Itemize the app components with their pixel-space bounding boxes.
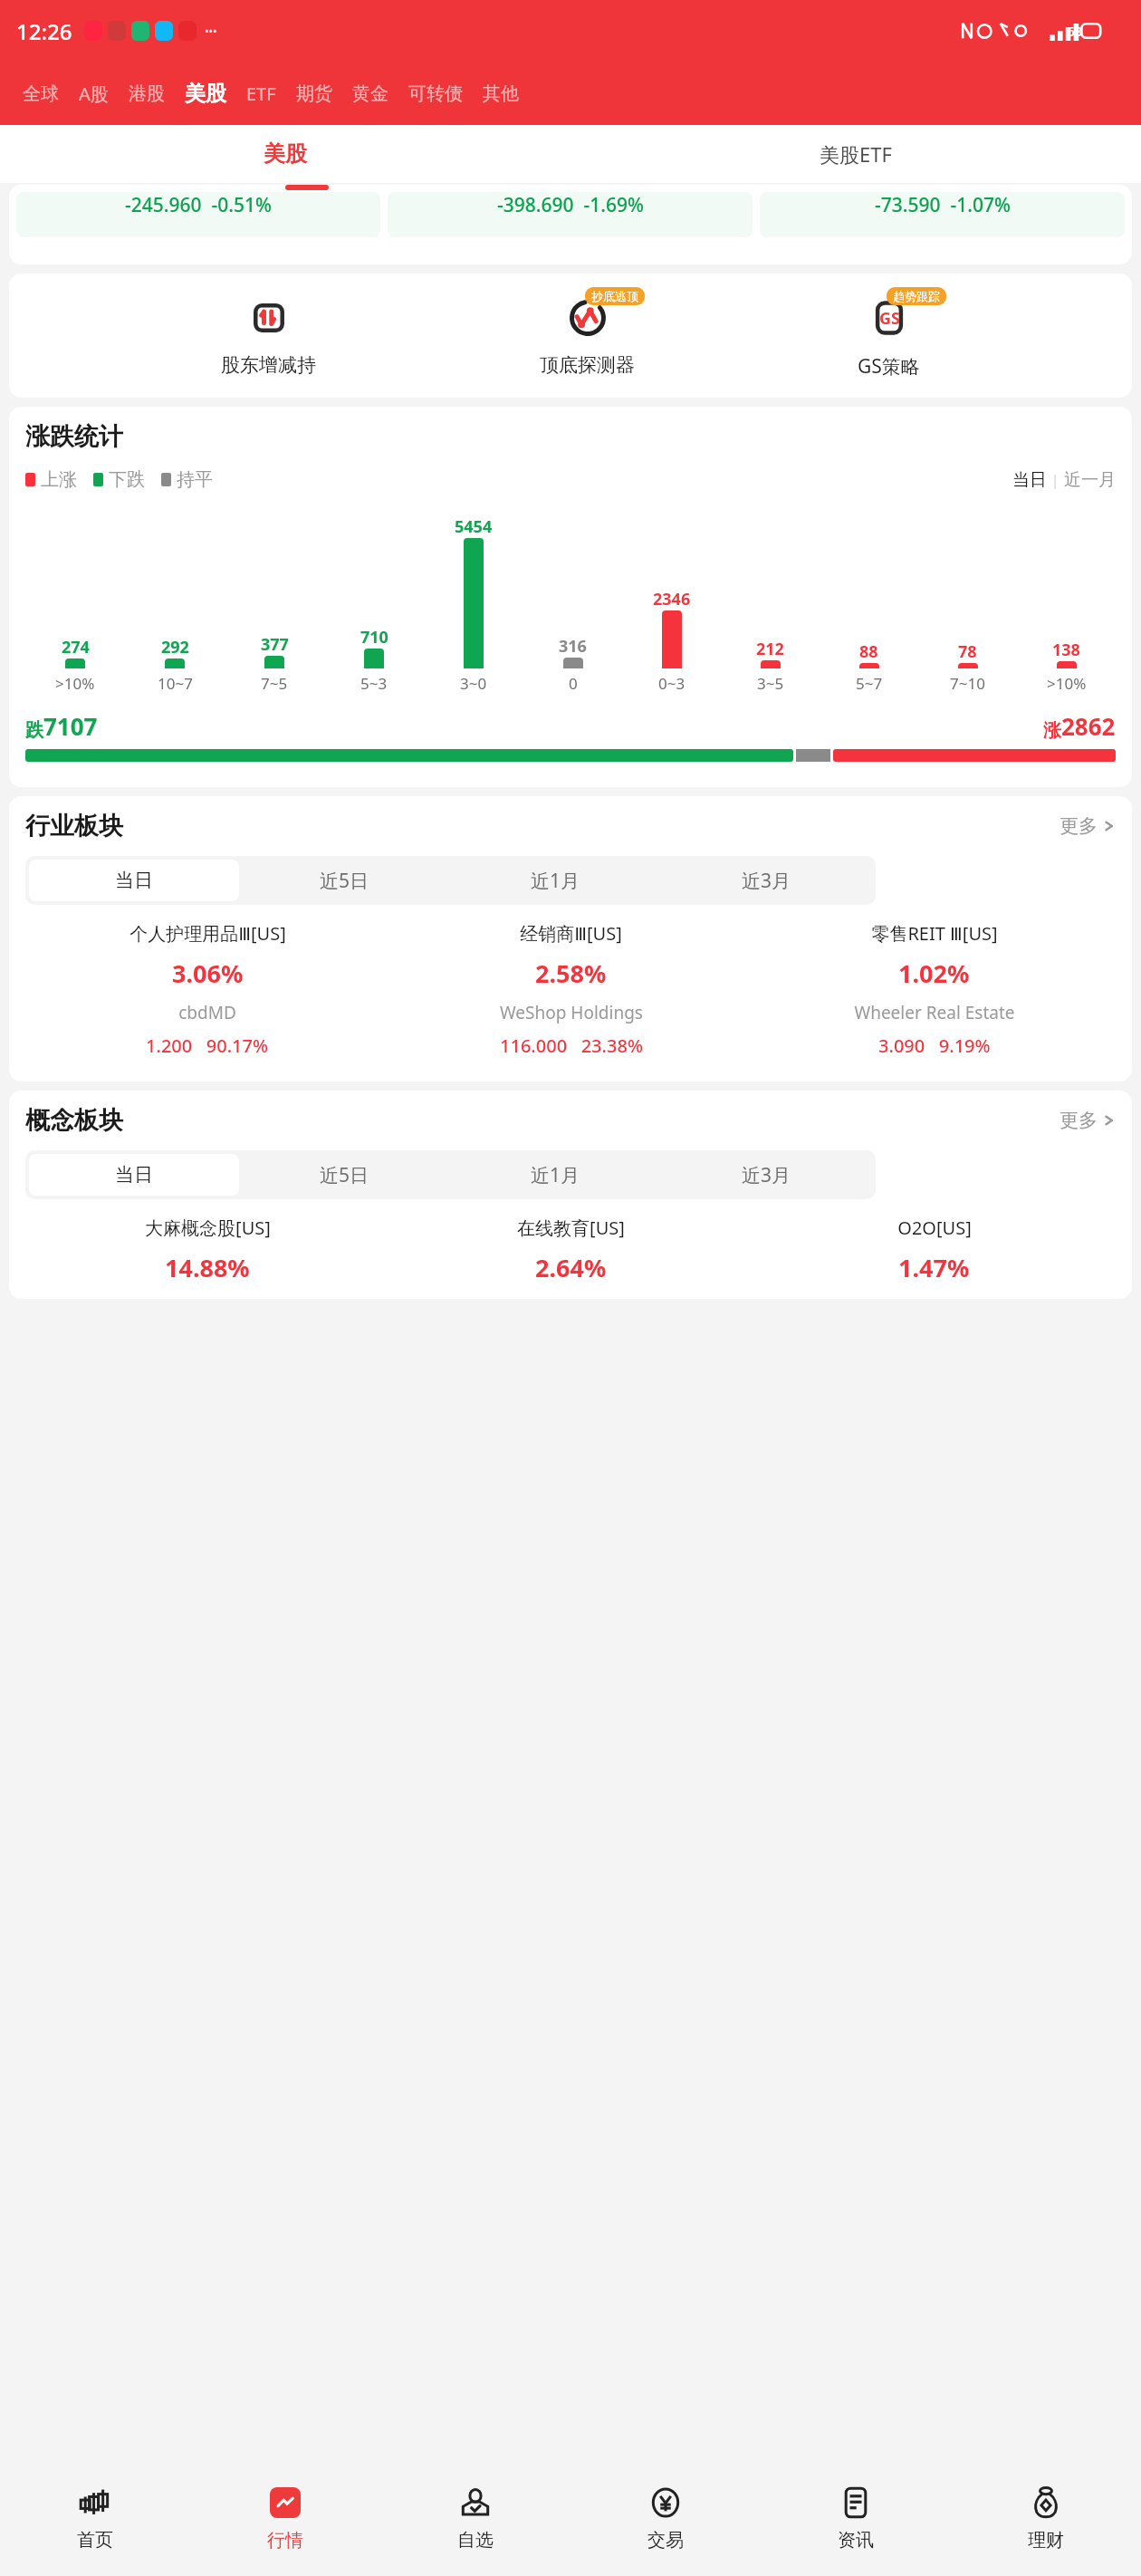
- staticText: 710: [360, 626, 388, 649]
- staticText: 黄金: [352, 82, 388, 105]
- staticText: 交易: [647, 2529, 684, 2552]
- staticText: 1.02%: [898, 956, 970, 990]
- staticText: 当日: [1012, 469, 1047, 491]
- staticText: •••: [205, 24, 217, 38]
- staticText: 116.000 23.38%: [500, 1033, 643, 1058]
- staticText: |: [1047, 469, 1064, 490]
- button[interactable]: A股: [69, 82, 119, 106]
- staticText: 7~10: [950, 673, 985, 694]
- button[interactable]: 行情: [190, 2458, 380, 2576]
- staticText: 2862: [1061, 710, 1116, 742]
- button[interactable]: 自选: [380, 2458, 570, 2576]
- staticText: 10~7: [158, 673, 193, 694]
- staticText: 212: [756, 638, 784, 660]
- staticText: GS策略: [858, 353, 920, 380]
- button[interactable]: 全球: [13, 82, 69, 105]
- button[interactable]: 零售REIT Ⅲ[US]: [753, 921, 1116, 1058]
- button[interactable]: GS策略: [847, 292, 931, 380]
- other: 自选: [459, 2486, 492, 2519]
- button[interactable]: 其他: [473, 82, 529, 105]
- staticText: 近1月: [531, 868, 580, 894]
- staticText: 63: [1067, 22, 1083, 40]
- button[interactable]: 经销商Ⅲ[US]: [389, 921, 753, 1058]
- staticText: 当日: [115, 1163, 153, 1187]
- button[interactable]: 首页: [0, 2458, 190, 2576]
- staticText: 涨跌统计: [25, 421, 123, 452]
- button[interactable]: 顶底探测器: [529, 292, 646, 377]
- button[interactable]: 期货: [286, 82, 342, 105]
- button[interactable]: 交易: [570, 2458, 761, 2576]
- staticText: O2O[US]: [897, 1216, 972, 1240]
- staticText: -245.960 -0.51%: [125, 192, 272, 218]
- button[interactable]: 港股: [119, 82, 175, 105]
- button[interactable]: O2O[US]: [753, 1216, 1116, 1284]
- staticText: 5~3: [360, 673, 388, 694]
- staticText: 274: [62, 636, 90, 658]
- staticText: GS: [879, 307, 900, 330]
- staticText: 概念板块: [25, 1105, 123, 1136]
- button[interactable]: -245.960 -0.51%: [16, 192, 380, 237]
- staticText: 持平: [177, 468, 213, 491]
- other: 交易: [649, 2486, 682, 2519]
- button[interactable]: 更多: [1059, 814, 1116, 838]
- button[interactable]: 当日: [29, 860, 239, 901]
- staticText: >10%: [1047, 673, 1087, 694]
- button[interactable]: 在线教育[US]: [389, 1216, 753, 1284]
- button[interactable]: 近1月: [450, 860, 661, 901]
- staticText: 1.200 90.17%: [146, 1033, 269, 1058]
- button[interactable]: 当日: [29, 1154, 239, 1196]
- button[interactable]: 近1月: [450, 1154, 661, 1196]
- staticText: 行业板块: [25, 811, 123, 841]
- button[interactable]: 近一月: [1064, 469, 1116, 491]
- staticText: 美股: [264, 140, 307, 168]
- button[interactable]: 近3月: [661, 1154, 872, 1196]
- button[interactable]: 理财: [951, 2458, 1141, 2576]
- button[interactable]: -398.690 -1.69%: [388, 192, 753, 237]
- staticText: 美股: [185, 81, 226, 107]
- staticText: 全球: [23, 82, 59, 105]
- button[interactable]: 美股: [175, 81, 236, 107]
- button[interactable]: 更多: [1059, 1109, 1116, 1132]
- staticText: 美股ETF: [820, 140, 892, 168]
- staticText: 更多: [1059, 814, 1098, 838]
- staticText: 377: [261, 633, 289, 656]
- staticText: 在线教育[US]: [517, 1216, 625, 1240]
- button[interactable]: 资讯: [761, 2458, 951, 2576]
- staticText: 近1月: [531, 1162, 580, 1188]
- staticText: WeShop Holdings: [500, 1001, 643, 1024]
- button[interactable]: -73.590 -1.07%: [760, 192, 1125, 237]
- other: 资讯: [839, 2486, 872, 2519]
- button[interactable]: 美股: [0, 125, 570, 183]
- staticText: 5~7: [856, 673, 883, 694]
- staticText: >10%: [55, 673, 95, 694]
- staticText: 0~3: [658, 673, 686, 694]
- staticText: 2.58%: [535, 956, 607, 990]
- staticText: 3.090 9.19%: [878, 1033, 991, 1058]
- button[interactable]: 近5日: [239, 1154, 450, 1196]
- staticText: A股: [79, 82, 109, 106]
- button[interactable]: 近3月: [661, 860, 872, 901]
- button[interactable]: 当日: [1012, 469, 1047, 491]
- button[interactable]: 可转债: [398, 82, 473, 105]
- staticText: 股东增减持: [221, 353, 316, 377]
- staticText: 零售REIT Ⅲ[US]: [871, 921, 998, 946]
- button[interactable]: 大麻概念股[US]: [25, 1216, 389, 1284]
- button[interactable]: ETF: [236, 82, 286, 106]
- button[interactable]: 美股ETF: [570, 125, 1141, 183]
- button[interactable]: 股东增减持: [210, 292, 327, 377]
- staticText: 顶底探测器: [540, 353, 635, 377]
- staticText: 当日: [115, 869, 153, 892]
- staticText: -398.690 -1.69%: [497, 192, 644, 218]
- staticText: 3.06%: [172, 956, 244, 990]
- staticText: 理财: [1028, 2529, 1064, 2552]
- button[interactable]: 近5日: [239, 860, 450, 901]
- staticText: 0: [569, 673, 578, 694]
- staticText: 12:26: [16, 16, 72, 46]
- other: 理财: [1030, 2486, 1062, 2519]
- button[interactable]: 黄金: [342, 82, 398, 105]
- staticText: 近5日: [320, 1162, 369, 1188]
- staticText: 88: [859, 640, 878, 663]
- staticText: 近一月: [1064, 469, 1116, 491]
- button[interactable]: 个人护理用品Ⅲ[US]: [25, 921, 389, 1058]
- staticText: 292: [161, 636, 189, 658]
